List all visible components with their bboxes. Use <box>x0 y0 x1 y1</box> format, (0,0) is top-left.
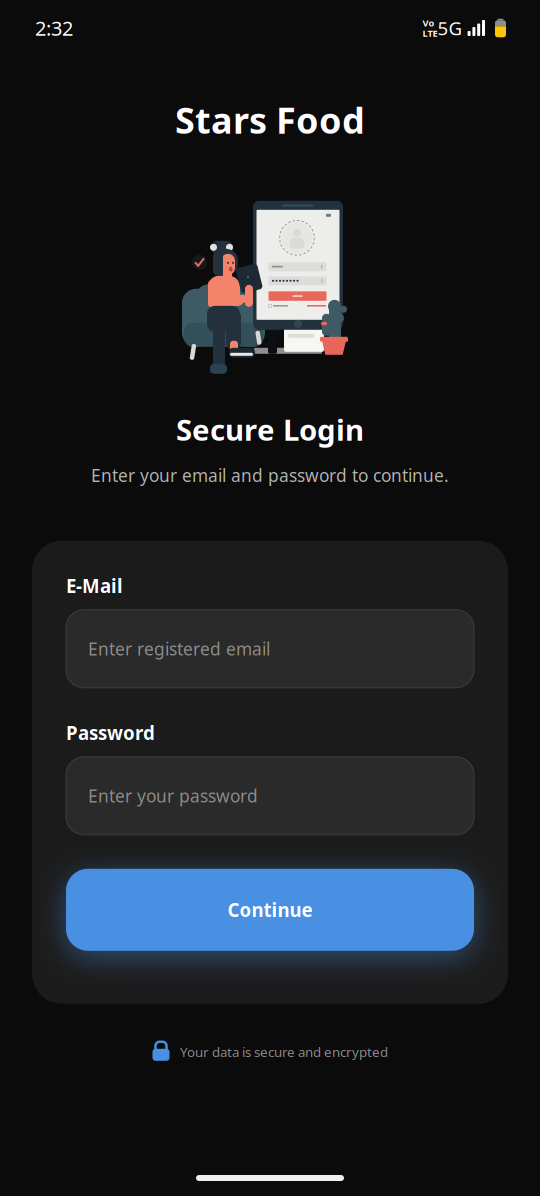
staticText: Stars Food <box>175 96 365 144</box>
staticText: Password <box>66 720 155 745</box>
staticText: Continue <box>227 897 312 922</box>
staticText: Secure Login <box>176 410 364 449</box>
staticText: Vo <box>423 17 435 29</box>
staticText: LTE <box>423 27 438 39</box>
staticText: 5G <box>438 16 463 40</box>
staticText: E-Mail <box>66 573 123 598</box>
button[interactable]: Enter your password <box>66 757 474 835</box>
button[interactable]: Enter registered email <box>66 610 474 688</box>
staticText: Enter your email and password to continu… <box>91 464 449 487</box>
staticText: 2:32 <box>35 15 73 41</box>
staticText: Enter your password <box>88 784 258 807</box>
button[interactable]: Continue <box>66 869 474 951</box>
staticText: Your data is secure and encrypted <box>180 1043 388 1061</box>
staticText: Enter registered email <box>88 637 270 660</box>
